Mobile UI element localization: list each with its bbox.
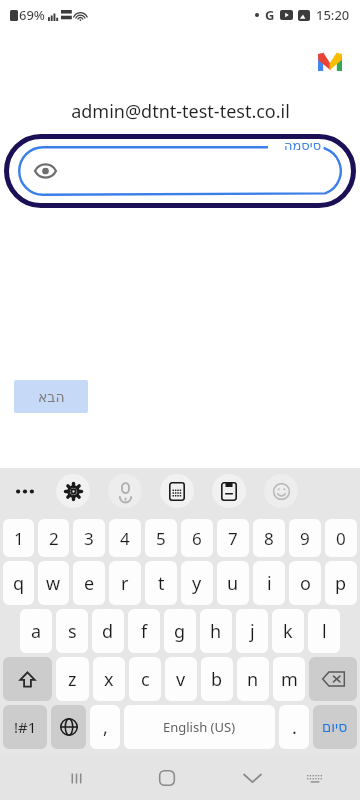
button[interactable]: Show password bbox=[30, 156, 60, 186]
button[interactable]: Handwriting bbox=[160, 474, 194, 508]
button[interactable]: j bbox=[236, 609, 268, 653]
button[interactable]: x bbox=[93, 657, 125, 701]
button[interactable]: z bbox=[56, 657, 89, 701]
button[interactable]: w bbox=[38, 561, 69, 605]
staticText: 1 bbox=[14, 527, 24, 550]
button[interactable]: More options bbox=[8, 474, 42, 508]
button[interactable]: 6 bbox=[181, 519, 213, 557]
staticText: y bbox=[192, 571, 202, 596]
button[interactable]: Done bbox=[313, 705, 357, 749]
staticText: i bbox=[267, 571, 272, 596]
button[interactable]: Space bbox=[124, 705, 275, 749]
button[interactable]: הבא bbox=[14, 380, 88, 413]
staticText: h bbox=[210, 619, 222, 644]
button[interactable]: 3 bbox=[73, 519, 105, 557]
button[interactable]: k bbox=[272, 609, 304, 653]
button[interactable]: 4 bbox=[109, 519, 141, 557]
button[interactable]: v bbox=[165, 657, 197, 701]
staticText: 8 bbox=[264, 527, 274, 550]
staticText: 3 bbox=[84, 527, 94, 550]
staticText: d bbox=[102, 619, 114, 644]
button[interactable]: Symbols bbox=[3, 705, 47, 749]
button[interactable]: 2 bbox=[38, 519, 69, 557]
button[interactable]: Comma bbox=[90, 705, 120, 749]
staticText: s bbox=[68, 619, 77, 644]
button[interactable]: Switch keyboard bbox=[293, 756, 337, 800]
staticText: a bbox=[31, 619, 42, 644]
staticText: k bbox=[283, 619, 293, 644]
button[interactable]: Clipboard bbox=[212, 474, 246, 508]
button[interactable]: p bbox=[325, 561, 357, 605]
other: Gmail bbox=[318, 52, 342, 71]
button[interactable]: Emoji bbox=[264, 474, 298, 508]
staticText: q bbox=[13, 571, 25, 596]
button[interactable]: Shift bbox=[3, 657, 52, 701]
button[interactable]: c bbox=[129, 657, 161, 701]
staticText: 9 bbox=[300, 527, 310, 550]
button[interactable]: 9 bbox=[289, 519, 321, 557]
button[interactable]: 0 bbox=[325, 519, 357, 557]
button[interactable]: o bbox=[289, 561, 321, 605]
button[interactable]: h bbox=[200, 609, 232, 653]
staticText: o bbox=[300, 571, 311, 596]
button[interactable]: y bbox=[181, 561, 213, 605]
staticText: admin@dtnt-test-test.co.il bbox=[71, 99, 290, 124]
button[interactable]: i bbox=[253, 561, 285, 605]
button[interactable]: Backspace bbox=[309, 657, 357, 701]
button[interactable]: Voice input bbox=[108, 474, 142, 508]
staticText: 4 bbox=[120, 527, 130, 550]
staticText: הבא bbox=[38, 389, 65, 405]
staticText: 15:20 bbox=[316, 6, 350, 24]
staticText: p bbox=[335, 571, 347, 596]
button[interactable]: m bbox=[273, 657, 305, 701]
button[interactable]: e bbox=[73, 561, 105, 605]
button[interactable]: 8 bbox=[253, 519, 285, 557]
button[interactable]: Change language bbox=[51, 705, 86, 749]
staticText: l bbox=[322, 619, 327, 644]
button[interactable]: b bbox=[201, 657, 233, 701]
button[interactable]: Recent apps bbox=[54, 756, 98, 800]
button[interactable]: Period bbox=[279, 705, 309, 749]
button[interactable]: g bbox=[164, 609, 196, 653]
staticText: j bbox=[250, 619, 255, 644]
staticText: e bbox=[84, 571, 95, 596]
button[interactable]: t bbox=[145, 561, 177, 605]
staticText: 0 bbox=[336, 527, 346, 550]
staticText: x bbox=[104, 667, 114, 692]
button[interactable]: 1 bbox=[3, 519, 34, 557]
staticText: z bbox=[68, 667, 77, 692]
staticText: r bbox=[121, 571, 129, 596]
staticText: v bbox=[176, 667, 186, 692]
staticText: English (US) bbox=[163, 718, 236, 736]
button[interactable]: n bbox=[237, 657, 269, 701]
button[interactable]: סיסמה bbox=[4, 134, 356, 208]
button[interactable]: l bbox=[308, 609, 340, 653]
staticText: . bbox=[292, 715, 297, 740]
staticText: 2 bbox=[49, 527, 59, 550]
staticText: סיסמה bbox=[284, 138, 322, 153]
button[interactable]: q bbox=[3, 561, 34, 605]
button[interactable]: a bbox=[20, 609, 52, 653]
button[interactable]: 7 bbox=[217, 519, 249, 557]
button[interactable]: u bbox=[217, 561, 249, 605]
staticText: t bbox=[158, 571, 165, 596]
staticText: f bbox=[141, 619, 148, 644]
staticText: 7 bbox=[228, 527, 238, 550]
button[interactable]: r bbox=[109, 561, 141, 605]
staticText: n bbox=[247, 667, 259, 692]
staticText: 6 bbox=[192, 527, 202, 550]
staticText: w bbox=[46, 571, 61, 596]
button[interactable]: Home bbox=[145, 756, 189, 800]
button[interactable]: Keyboard settings bbox=[56, 474, 90, 508]
button[interactable]: 5 bbox=[145, 519, 177, 557]
button[interactable]: s bbox=[56, 609, 88, 653]
staticText: סיום bbox=[322, 719, 348, 735]
button[interactable]: f bbox=[128, 609, 160, 653]
staticText: 5 bbox=[156, 527, 166, 550]
staticText: 69% bbox=[19, 6, 45, 24]
staticText: , bbox=[103, 715, 108, 740]
button[interactable]: Hide keyboard bbox=[230, 756, 274, 800]
staticText: g bbox=[174, 619, 186, 644]
staticText: !#1 bbox=[14, 717, 37, 737]
button[interactable]: d bbox=[92, 609, 124, 653]
